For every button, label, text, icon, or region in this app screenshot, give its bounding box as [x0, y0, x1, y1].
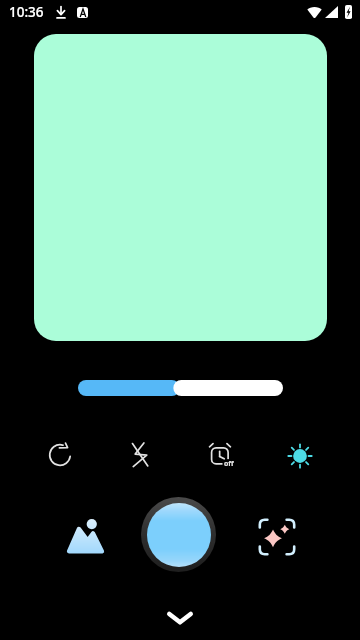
button[interactable]: Collapse [156, 594, 204, 640]
button[interactable]: Timer off [198, 432, 246, 480]
button[interactable]: Gallery [61, 511, 109, 559]
staticText: off [224, 459, 234, 469]
button[interactable]: Zoom [78, 380, 283, 396]
button[interactable]: Take photo [141, 497, 216, 572]
button[interactable]: AI scan [253, 513, 301, 561]
button[interactable]: Flash off [116, 431, 164, 479]
staticText: 10:36 [9, 3, 44, 21]
button[interactable]: Switch camera [36, 431, 84, 479]
button[interactable]: Brightness [276, 432, 324, 480]
